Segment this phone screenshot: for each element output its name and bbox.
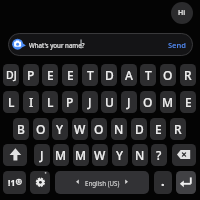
button[interactable]: E bbox=[62, 64, 78, 86]
staticText: Y bbox=[56, 121, 64, 137]
button[interactable]: A bbox=[121, 64, 137, 86]
button[interactable]: D bbox=[101, 64, 117, 86]
button[interactable]: T bbox=[82, 64, 98, 86]
button[interactable] bbox=[3, 144, 27, 166]
staticText: P bbox=[27, 67, 35, 83]
staticText: W bbox=[94, 147, 106, 163]
staticText: R bbox=[174, 121, 182, 137]
staticText: L bbox=[47, 94, 54, 110]
staticText: M bbox=[55, 147, 67, 163]
staticText: O bbox=[143, 94, 153, 110]
staticText: M bbox=[162, 94, 174, 110]
staticText: What's your name? bbox=[29, 41, 85, 49]
button[interactable]: M bbox=[73, 144, 89, 166]
button[interactable]: R bbox=[180, 64, 196, 86]
button[interactable]: E bbox=[150, 118, 166, 140]
button[interactable] bbox=[176, 171, 196, 194]
button[interactable]: I bbox=[23, 91, 39, 113]
button[interactable]: . bbox=[154, 171, 172, 194]
button[interactable]: !1 bbox=[3, 171, 26, 194]
staticText: D bbox=[135, 121, 144, 137]
button[interactable]: E bbox=[180, 91, 196, 113]
button[interactable]: R bbox=[170, 118, 186, 140]
button[interactable] bbox=[30, 171, 50, 194]
staticText: J bbox=[127, 94, 131, 110]
staticText: Y bbox=[116, 147, 124, 163]
button[interactable]: O bbox=[33, 118, 49, 140]
button[interactable]: D bbox=[131, 118, 147, 140]
staticText: . bbox=[161, 172, 165, 190]
staticText: J bbox=[40, 147, 44, 163]
button[interactable]: J bbox=[34, 144, 50, 166]
staticText: !1 bbox=[8, 177, 16, 189]
button[interactable]: What's your name? bbox=[8, 33, 193, 56]
staticText: ? bbox=[156, 147, 162, 163]
staticText: N bbox=[135, 147, 145, 163]
staticText: O bbox=[163, 67, 173, 83]
staticText: A bbox=[125, 67, 133, 83]
button[interactable]: P bbox=[23, 64, 39, 86]
button[interactable]: N bbox=[132, 144, 148, 166]
staticText: DJ bbox=[6, 68, 17, 82]
staticText: E bbox=[47, 67, 54, 83]
staticText: M bbox=[75, 147, 87, 163]
staticText: O bbox=[36, 121, 46, 137]
button[interactable]: P bbox=[62, 91, 78, 113]
button[interactable]: ? bbox=[151, 144, 167, 166]
button[interactable]: E bbox=[42, 64, 58, 86]
button[interactable]: W bbox=[72, 118, 88, 140]
button[interactable]: English (US) bbox=[55, 171, 149, 194]
staticText: O bbox=[94, 121, 104, 137]
staticText: T bbox=[87, 67, 94, 83]
button[interactable]: B bbox=[13, 118, 29, 140]
button[interactable]: J bbox=[121, 91, 137, 113]
staticText: J bbox=[88, 94, 92, 110]
button[interactable]: O bbox=[91, 118, 107, 140]
button[interactable]: Send bbox=[162, 33, 192, 56]
staticText: Hi bbox=[178, 8, 186, 18]
staticText: D bbox=[105, 67, 114, 83]
staticText: B bbox=[17, 121, 25, 137]
button[interactable]: Y bbox=[112, 144, 128, 166]
staticText: U bbox=[105, 94, 114, 110]
button[interactable] bbox=[172, 144, 196, 166]
button[interactable]: M bbox=[53, 144, 69, 166]
button[interactable]: M bbox=[160, 91, 176, 113]
button[interactable]: O bbox=[160, 64, 176, 86]
staticText: English (US) bbox=[85, 179, 120, 187]
staticText: E bbox=[185, 94, 192, 110]
button[interactable]: DJ bbox=[3, 64, 19, 86]
button[interactable]: T bbox=[140, 64, 156, 86]
staticText: Send bbox=[168, 40, 186, 50]
button[interactable]: O bbox=[140, 91, 156, 113]
staticText: R bbox=[184, 67, 192, 83]
button[interactable]: W bbox=[92, 144, 108, 166]
staticText: E bbox=[155, 121, 162, 137]
button[interactable]: N bbox=[111, 118, 127, 140]
staticText: W bbox=[74, 121, 86, 137]
button[interactable]: U bbox=[101, 91, 117, 113]
button[interactable]: J bbox=[82, 91, 98, 113]
staticText: T bbox=[145, 67, 152, 83]
button[interactable]: L bbox=[3, 91, 19, 113]
button[interactable]: L bbox=[42, 91, 58, 113]
button[interactable]: Y bbox=[52, 118, 68, 140]
staticText: I bbox=[29, 94, 34, 110]
button[interactable]: Hi bbox=[171, 2, 193, 24]
staticText: N bbox=[114, 121, 124, 137]
staticText: E bbox=[67, 67, 74, 83]
staticText: L bbox=[8, 94, 15, 110]
staticText: P bbox=[66, 94, 74, 110]
